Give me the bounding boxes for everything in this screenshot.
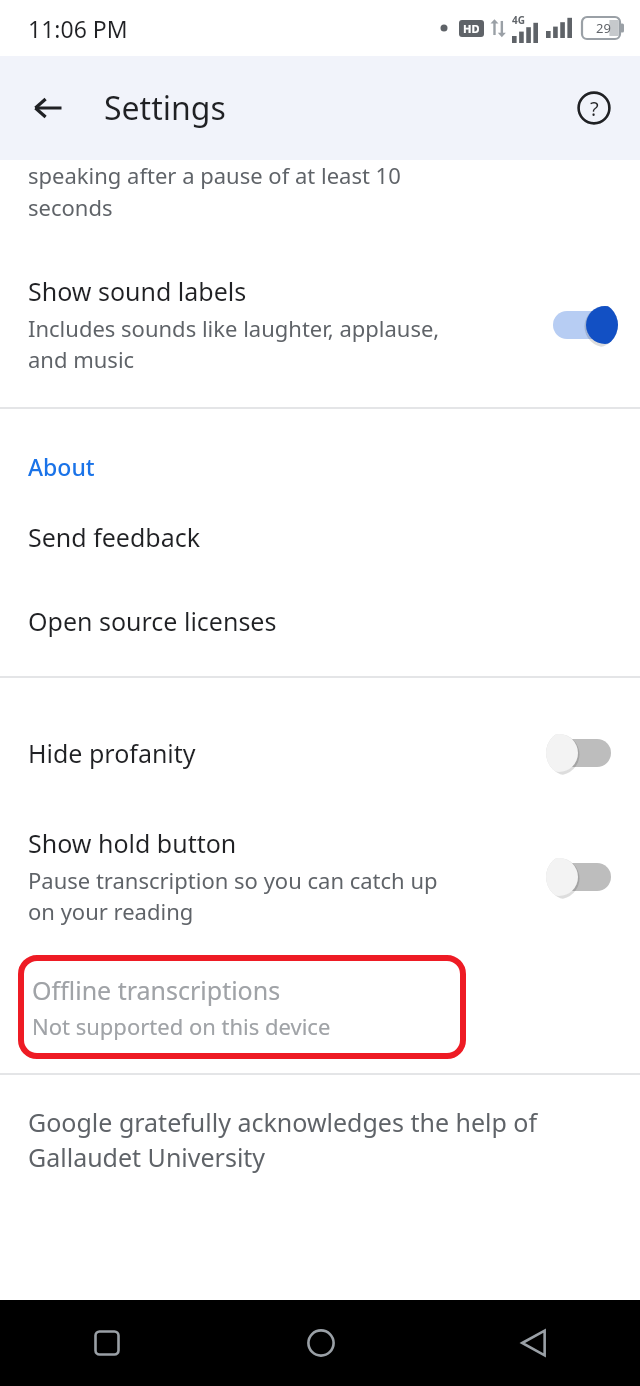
staticText: Offline transcriptions [32, 973, 281, 1007]
button[interactable]: Back [427, 1300, 640, 1386]
button[interactable]: Open source licenses [0, 604, 640, 638]
button[interactable]: Show hold button [0, 826, 640, 927]
staticText: 29 [596, 19, 611, 37]
staticText: speaking after a pause of at least 10 [28, 160, 401, 190]
staticText: HD [463, 21, 480, 36]
button[interactable]: Offline transcriptions [18, 955, 466, 1059]
staticText: ? [590, 95, 599, 122]
staticText: Not supported on this device [32, 1011, 331, 1041]
button[interactable]: Send feedback [0, 520, 640, 554]
staticText: About [28, 451, 95, 482]
button[interactable]: Toggle on [546, 302, 618, 348]
staticText: Google gratefully acknowledges the help … [28, 1105, 538, 1175]
button[interactable]: Show sound labels [0, 274, 640, 375]
button[interactable]: Back [20, 80, 76, 136]
staticText: Show hold button [28, 826, 237, 860]
staticText: Includes sounds like laughter, applause,… [28, 313, 440, 375]
staticText: seconds [28, 192, 113, 222]
button[interactable]: speaking after a pause of at least 10 [0, 160, 640, 222]
staticText: Pause transcription so you can catch up … [28, 865, 438, 927]
button[interactable]: Home [214, 1300, 427, 1386]
staticText: 4G [512, 13, 525, 27]
staticText: Open source licenses [28, 604, 277, 638]
button[interactable]: Hide profanity [0, 730, 640, 776]
button[interactable]: Toggle off [546, 854, 618, 900]
staticText: Hide profanity [28, 736, 196, 770]
staticText: Send feedback [28, 520, 201, 554]
staticText: 11:06 PM [28, 13, 128, 44]
staticText: Settings [104, 86, 226, 130]
button[interactable]: Toggle off [546, 730, 618, 776]
staticText: Show sound labels [28, 274, 247, 308]
button[interactable]: Recents [0, 1300, 214, 1386]
button[interactable]: Help [566, 80, 622, 136]
